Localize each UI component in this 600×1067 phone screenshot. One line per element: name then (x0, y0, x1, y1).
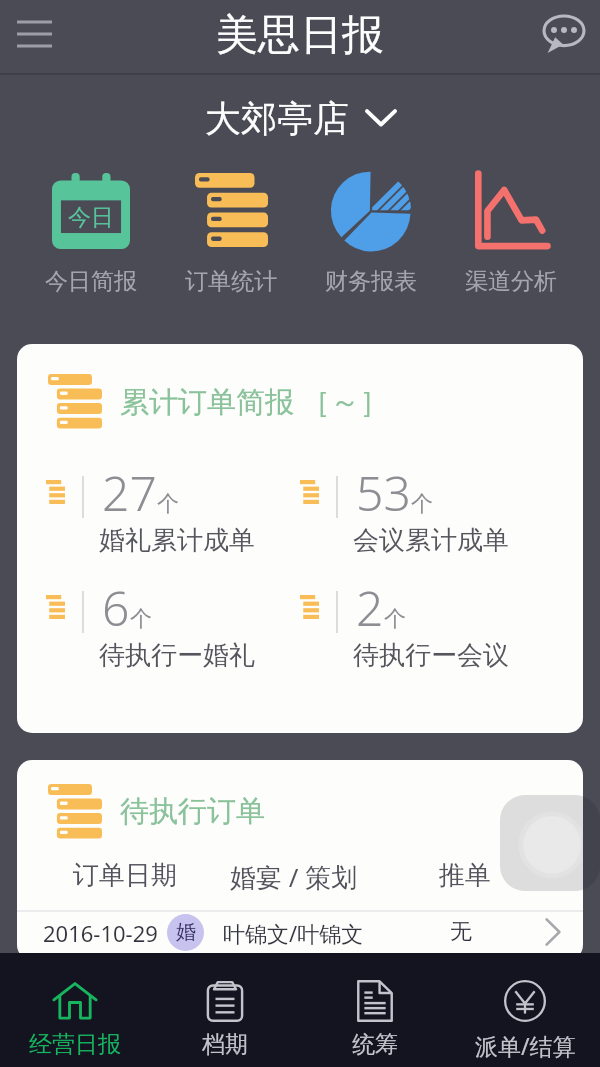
button[interactable]: 订单统计 (161, 160, 301, 310)
staticText: 婚礼累计成单 (99, 524, 255, 557)
staticText: 待执行ー会议 (353, 639, 509, 672)
staticText: 2 (356, 575, 384, 640)
staticText: 财务报表 (325, 267, 417, 296)
staticText: 27 (102, 460, 157, 525)
staticText: 订单日期 (73, 859, 177, 892)
button[interactable]: 2016-10-29 (17, 912, 583, 960)
button[interactable]: 大郊亭店 (0, 76, 600, 160)
staticText: 53 (356, 460, 411, 525)
button[interactable]: 统筹 (300, 953, 450, 1067)
staticText: 美思日报 (216, 9, 384, 62)
button[interactable]: 今日 (20, 160, 161, 310)
staticText: 经营日报 (29, 1030, 121, 1059)
staticText: 2016-10-29 (43, 918, 158, 948)
button[interactable]: Messages (534, 0, 600, 70)
staticText: 婚 (176, 920, 196, 945)
staticText: 个 (411, 490, 433, 518)
button[interactable]: 档期 (150, 953, 300, 1067)
staticText: 会议累计成单 (353, 524, 509, 557)
button[interactable]: Assistive touch (500, 795, 600, 891)
staticText: 婚宴 / 策划 (230, 859, 358, 895)
button[interactable]: 经营日报 (0, 953, 150, 1067)
staticText: 大郊亭店 (205, 96, 349, 141)
staticText: 档期 (202, 1030, 248, 1059)
staticText: 今日简报 (45, 267, 137, 296)
staticText: 统筹 (352, 1030, 398, 1059)
staticText: 派单/结算 (475, 1030, 576, 1061)
staticText: 今日 (68, 203, 114, 232)
staticText: 累计订单简报 ［～］ (120, 381, 389, 421)
staticText: 叶锦文/叶锦文 (223, 918, 364, 948)
button[interactable]: Menu (0, 0, 70, 68)
staticText: 待执行订单 (120, 793, 265, 830)
staticText: 渠道分析 (465, 267, 557, 296)
staticText: 个 (157, 490, 179, 518)
staticText: 订单统计 (185, 267, 277, 296)
staticText: 无 (450, 918, 472, 946)
staticText: 推单 (439, 859, 491, 892)
staticText: 待执行ー婚礼 (99, 639, 255, 672)
button[interactable]: 渠道分析 (441, 160, 581, 310)
button[interactable]: 财务报表 (301, 160, 441, 310)
staticText: 个 (384, 605, 406, 633)
button[interactable]: 派单/结算 (450, 953, 600, 1067)
staticText: 个 (130, 605, 152, 633)
staticText: 6 (102, 575, 130, 640)
